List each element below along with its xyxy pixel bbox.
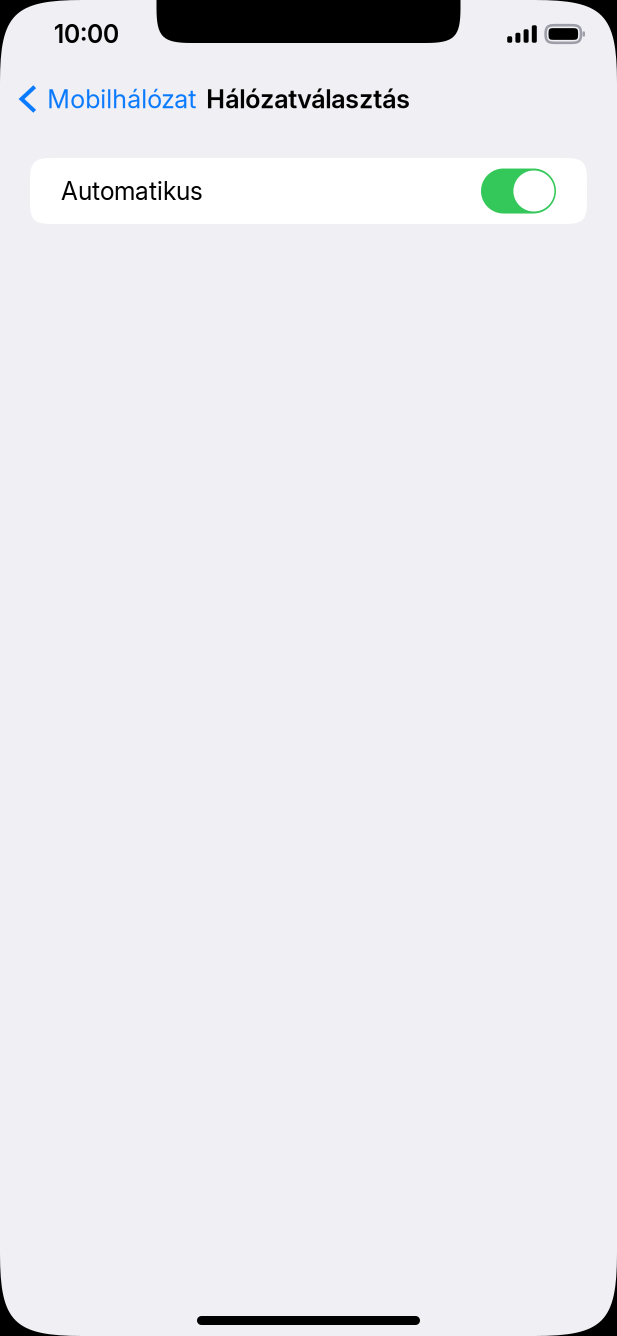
staticText: 10:00	[54, 19, 119, 49]
staticText: Automatikus	[61, 176, 203, 206]
staticText: Hálózatválasztás	[206, 84, 410, 114]
button[interactable]: Automatikus	[30, 158, 587, 224]
button[interactable]: Vissza: Mobilhálózat	[0, 72, 202, 126]
staticText: Mobilhálózat	[47, 84, 196, 114]
